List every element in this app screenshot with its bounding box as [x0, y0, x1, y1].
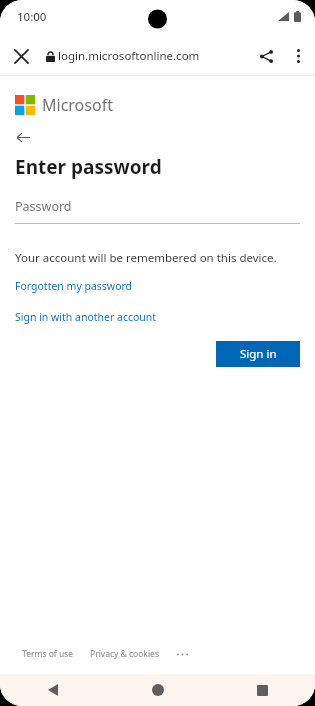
- button[interactable]: More options: [281, 39, 315, 73]
- button[interactable]: Terms of use: [22, 648, 74, 660]
- button[interactable]: Forgotten my password: [15, 279, 133, 293]
- button[interactable]: Back: [0, 674, 105, 706]
- staticText: Your account will be remembered on this …: [15, 250, 277, 266]
- button[interactable]: Sign in: [216, 341, 300, 367]
- staticText: 10:00: [17, 9, 47, 25]
- staticText: Microsoft: [42, 94, 113, 116]
- button[interactable]: More links: [172, 647, 192, 661]
- button[interactable]: Recent apps: [210, 674, 315, 706]
- staticText: Terms of use: [22, 648, 74, 660]
- button[interactable]: Password: [15, 198, 300, 224]
- staticText: Password: [15, 198, 72, 215]
- button[interactable]: Close: [8, 43, 34, 69]
- staticText: login.microsoftonline.com: [58, 48, 200, 64]
- staticText: Sign in with another account: [15, 310, 157, 324]
- staticText: Forgotten my password: [15, 279, 133, 293]
- button[interactable]: Privacy & cookies: [90, 648, 159, 660]
- button[interactable]: Back: [11, 125, 35, 149]
- staticText: Privacy & cookies: [90, 648, 159, 660]
- button[interactable]: Share: [251, 41, 281, 71]
- staticText: Sign in: [240, 346, 277, 362]
- button[interactable]: Home: [105, 674, 210, 706]
- staticText: Enter password: [15, 154, 162, 180]
- button[interactable]: Sign in with another account: [15, 310, 157, 324]
